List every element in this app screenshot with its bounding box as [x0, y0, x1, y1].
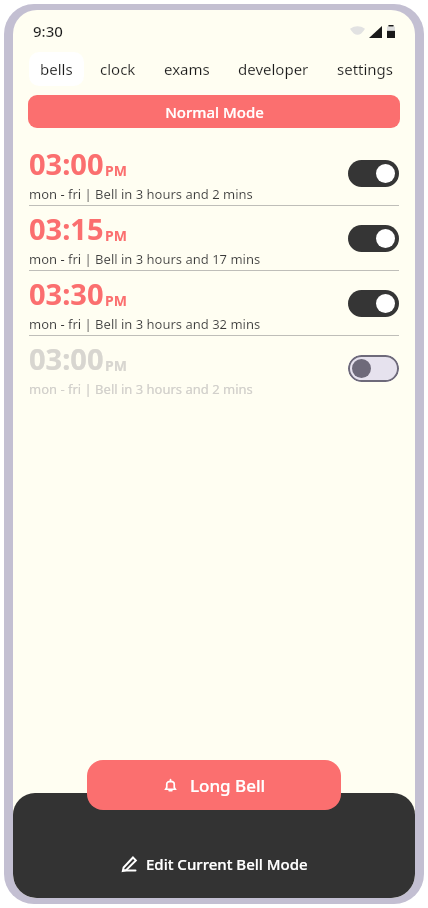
button[interactable]: Long Bell	[87, 760, 341, 810]
button[interactable]: 03:00	[13, 141, 415, 205]
staticText: 9:30	[33, 21, 63, 41]
staticText: exams	[164, 59, 210, 79]
button[interactable]: settings	[326, 52, 405, 86]
staticText: mon - fri | Bell in 3 hours and 2 mins	[29, 185, 253, 203]
staticText: Long Bell	[190, 774, 266, 797]
button[interactable]: 03:00	[13, 336, 415, 400]
button[interactable]: Edit Current Bell Mode	[110, 848, 318, 880]
staticText: mon - fri | Bell in 3 hours and 17 mins	[29, 250, 261, 268]
staticText: 03:15	[29, 209, 104, 248]
staticText: PM	[105, 161, 127, 180]
staticText: Normal Mode	[165, 102, 264, 122]
staticText: bells	[40, 59, 73, 79]
button[interactable]: bells	[29, 52, 84, 86]
staticText: 03:30	[29, 274, 104, 313]
staticText: settings	[337, 59, 394, 79]
staticText: PM	[105, 226, 127, 245]
staticText: clock	[100, 59, 136, 79]
button[interactable]: Normal Mode	[28, 95, 400, 128]
button[interactable]: Alarm on	[348, 290, 399, 317]
button[interactable]: developer	[227, 52, 320, 86]
staticText: mon - fri | Bell in 3 hours and 2 mins	[29, 380, 253, 398]
staticText: developer	[238, 59, 309, 79]
staticText: Edit Current Bell Mode	[146, 854, 308, 874]
staticText: PM	[105, 356, 127, 375]
staticText: PM	[105, 291, 127, 310]
staticText: 03:00	[29, 339, 104, 378]
button[interactable]: clock	[89, 52, 147, 86]
button[interactable]: Alarm on	[348, 160, 399, 187]
button[interactable]: Alarm on	[348, 225, 399, 252]
button[interactable]: Alarm off	[348, 355, 399, 382]
staticText: 03:00	[29, 144, 104, 183]
button[interactable]: exams	[153, 52, 221, 86]
staticText: mon - fri | Bell in 3 hours and 32 mins	[29, 315, 261, 333]
button[interactable]: 03:15	[13, 206, 415, 270]
button[interactable]: 03:30	[13, 271, 415, 335]
